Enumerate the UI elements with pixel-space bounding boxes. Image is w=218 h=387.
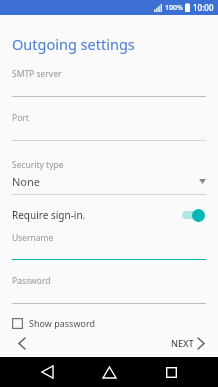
button[interactable]: Username <box>12 232 206 260</box>
staticText: None <box>12 174 199 189</box>
button[interactable]: Password <box>12 275 206 304</box>
staticText: Security type <box>12 159 64 171</box>
button[interactable]: Port <box>12 112 206 141</box>
button[interactable]: Require sign-in. <box>12 208 206 222</box>
staticText: SMTP server <box>12 68 62 80</box>
staticText: Outgoing settings <box>12 34 135 54</box>
staticText: Password <box>12 275 51 287</box>
button[interactable]: Recent apps <box>156 357 186 387</box>
button[interactable]: Security type <box>12 159 206 195</box>
staticText: NEXT <box>171 337 194 349</box>
staticText: Require sign-in. <box>12 208 180 222</box>
button[interactable]: NEXT <box>169 334 206 352</box>
staticText: Username <box>12 232 54 244</box>
staticText: 10:00 <box>193 2 214 13</box>
staticText: Port <box>12 112 29 124</box>
button[interactable]: Previous <box>12 333 32 353</box>
button[interactable]: Home <box>94 357 124 387</box>
button[interactable]: Show password <box>12 317 206 329</box>
button[interactable]: Back <box>32 357 62 387</box>
other: Expand security type <box>199 179 206 184</box>
staticText: Show password <box>29 317 95 329</box>
button[interactable]: SMTP server <box>12 68 206 97</box>
staticText: 100% <box>165 3 183 13</box>
